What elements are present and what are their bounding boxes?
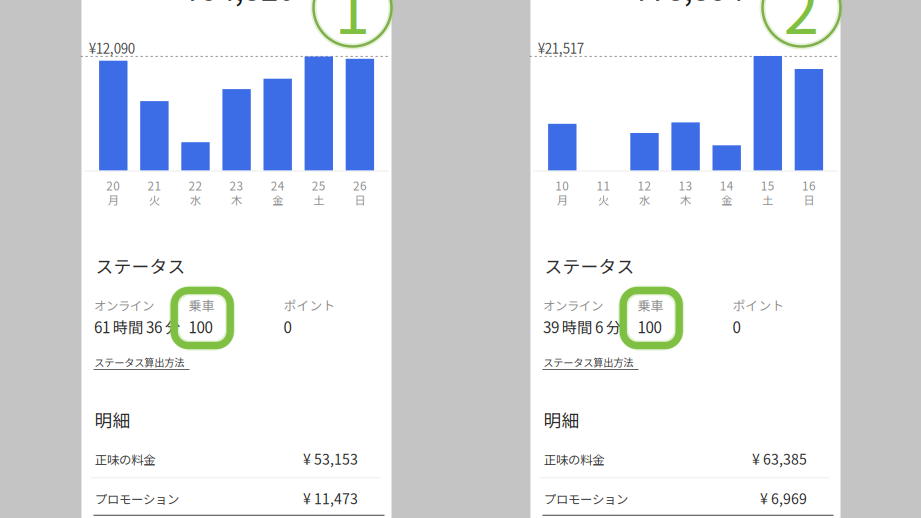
- staticText: 正味の料金: [544, 450, 604, 468]
- staticText: 13: [679, 177, 693, 194]
- button[interactable]: 正味の料金: [81, 438, 391, 479]
- staticText: ¥ 53,153: [303, 448, 358, 469]
- staticText: 39 時間 6 分: [543, 315, 621, 337]
- staticText: 2: [783, 0, 819, 52]
- staticText: ¥12,090: [89, 38, 135, 58]
- staticText: 日: [803, 191, 814, 208]
- staticText: 10: [555, 177, 569, 194]
- staticText: 火: [149, 191, 160, 208]
- staticText: ¥21,517: [538, 38, 584, 58]
- staticText: 木: [680, 191, 691, 208]
- staticText: 61 時間 36 分: [94, 315, 180, 337]
- staticText: 正味の料金: [95, 450, 155, 468]
- staticText: ステータス: [95, 253, 185, 278]
- staticText: ¥78,354: [633, 0, 744, 10]
- staticText: 土: [313, 191, 324, 208]
- staticText: 火: [598, 191, 609, 208]
- staticText: ¥ 6,969: [760, 488, 807, 508]
- staticText: 水: [190, 191, 201, 208]
- button[interactable]: ステータス算出方法: [0, 0, 96, 18]
- staticText: 15: [761, 177, 775, 194]
- staticText: ステータス: [544, 253, 634, 278]
- staticText: オンライン: [94, 296, 154, 314]
- staticText: オンライン: [543, 296, 603, 314]
- button[interactable]: 正味の料金: [530, 438, 840, 479]
- staticText: 23: [230, 177, 244, 194]
- button[interactable]: プロモーション: [530, 478, 840, 517]
- staticText: 16: [802, 177, 816, 194]
- staticText: 土: [762, 191, 773, 208]
- staticText: 26: [353, 177, 367, 194]
- staticText: 0: [283, 315, 291, 337]
- staticText: 乗車: [188, 295, 214, 314]
- staticText: 月: [557, 191, 568, 208]
- staticText: 14: [720, 177, 734, 194]
- staticText: 乗車: [637, 295, 663, 314]
- staticText: 木: [231, 191, 242, 208]
- staticText: 21: [147, 177, 161, 194]
- staticText: ¥ 63,385: [752, 448, 807, 469]
- staticText: 1: [334, 0, 370, 52]
- staticText: ステータス算出方法: [543, 355, 633, 369]
- staticText: 月: [108, 191, 119, 208]
- button[interactable]: プロモーション: [81, 478, 391, 517]
- staticText: 日: [354, 191, 365, 208]
- staticText: 100: [188, 315, 212, 337]
- staticText: 明細: [94, 407, 130, 432]
- staticText: 11: [596, 177, 610, 194]
- staticText: ¥ 11,473: [303, 488, 358, 508]
- staticText: 明細: [543, 407, 579, 432]
- staticText: 金: [272, 191, 283, 208]
- staticText: ¥54,320: [184, 0, 295, 10]
- staticText: 0: [732, 315, 740, 337]
- staticText: 100: [637, 315, 661, 337]
- staticText: 金: [721, 191, 732, 208]
- staticText: ポイント: [732, 296, 784, 314]
- staticText: プロモーション: [95, 489, 179, 507]
- staticText: 22: [188, 177, 202, 194]
- staticText: 25: [312, 177, 326, 194]
- staticText: 20: [106, 177, 120, 194]
- staticText: ポイント: [283, 296, 335, 314]
- staticText: 水: [639, 191, 650, 208]
- button[interactable]: ステータス算出方法: [0, 0, 96, 18]
- staticText: 24: [271, 177, 285, 194]
- staticText: ステータス算出方法: [94, 355, 184, 369]
- staticText: プロモーション: [544, 489, 628, 507]
- staticText: 12: [637, 177, 651, 194]
